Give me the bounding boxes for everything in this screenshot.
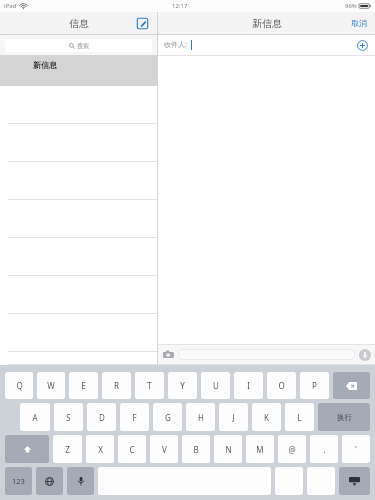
button[interactable]: J — [219, 403, 248, 431]
button[interactable]: V — [150, 435, 178, 463]
button[interactable]: Shift — [5, 435, 49, 463]
button[interactable]: 收起键盘 — [339, 467, 370, 495]
staticText: 123 — [12, 476, 25, 486]
button[interactable]: Z — [53, 435, 82, 463]
staticText: 96% — [345, 2, 357, 10]
staticText: S — [66, 412, 71, 423]
staticText: 12:17 — [172, 2, 188, 10]
staticText: 信息 — [69, 17, 89, 30]
staticText: @ — [288, 444, 296, 455]
staticText: Z — [65, 444, 70, 455]
staticText: . — [323, 444, 326, 455]
button[interactable] — [0, 276, 157, 314]
button[interactable]: ' — [342, 435, 370, 463]
button[interactable]: R — [102, 372, 131, 399]
button[interactable]: 语音信息 — [358, 348, 371, 361]
button[interactable]: C — [118, 435, 146, 463]
button[interactable] — [0, 238, 157, 276]
staticText: G — [165, 412, 171, 423]
staticText: W — [47, 380, 55, 391]
button[interactable]: . — [310, 435, 338, 463]
staticText: U — [213, 380, 219, 391]
staticText: J — [232, 412, 235, 423]
button[interactable]: D — [87, 403, 116, 431]
button[interactable]: 撰写新信息 — [134, 15, 150, 31]
staticText: H — [198, 412, 204, 423]
staticText: 新信息 — [33, 60, 57, 70]
button[interactable]: A — [20, 403, 50, 431]
button[interactable] — [178, 349, 355, 360]
button[interactable]: 添加联系人 — [355, 38, 369, 52]
staticText: R — [114, 380, 119, 391]
staticText: A — [32, 412, 38, 423]
staticText: K — [264, 412, 269, 423]
staticText: 搜索 — [77, 42, 89, 50]
button[interactable]: 切换输入法 — [36, 467, 63, 495]
staticText: Q — [16, 380, 23, 391]
staticText: D — [99, 412, 105, 423]
button[interactable]: 听写 — [67, 467, 94, 495]
button[interactable]: @ — [278, 435, 306, 463]
button[interactable]: Y — [168, 372, 197, 399]
button[interactable]: T — [135, 372, 164, 399]
button[interactable]: 换行 — [318, 403, 370, 431]
button[interactable]: F — [120, 403, 149, 431]
button[interactable]: G — [153, 403, 182, 431]
staticText: 新信息 — [252, 17, 282, 30]
button[interactable]: K — [252, 403, 281, 431]
staticText: M — [256, 444, 264, 455]
button[interactable]: O — [267, 372, 296, 399]
staticText: T — [147, 380, 152, 391]
staticText: F — [132, 412, 137, 423]
button[interactable]: 删除 — [333, 372, 370, 399]
button[interactable] — [0, 86, 157, 124]
button[interactable]: P — [300, 372, 329, 399]
button[interactable]: S — [54, 403, 83, 431]
button[interactable]: Q — [5, 372, 33, 399]
button[interactable]: I — [234, 372, 263, 399]
button[interactable]: E — [69, 372, 98, 399]
button[interactable] — [0, 200, 157, 238]
staticText: I — [247, 380, 250, 391]
button[interactable]: U — [201, 372, 230, 399]
button[interactable]: 取消 — [349, 16, 369, 30]
staticText: P — [312, 380, 317, 391]
button[interactable]: 新信息 — [0, 55, 157, 86]
button[interactable] — [0, 352, 157, 365]
staticText: Y — [180, 380, 185, 391]
staticText: 换行 — [337, 413, 352, 422]
button[interactable]: 搜索 — [5, 39, 152, 52]
staticText: B — [193, 444, 199, 455]
button[interactable] — [0, 124, 157, 162]
button[interactable]: L — [285, 403, 314, 431]
staticText: V — [162, 444, 167, 455]
button[interactable]: X — [86, 435, 114, 463]
button[interactable]: W — [37, 372, 65, 399]
staticText: E — [81, 380, 86, 391]
staticText: C — [129, 444, 135, 455]
staticText: O — [278, 380, 285, 391]
staticText: iPad — [4, 2, 17, 10]
button[interactable]: 123 — [5, 467, 32, 495]
button[interactable]: H — [186, 403, 215, 431]
staticText: ' — [355, 444, 357, 455]
button[interactable]: M — [246, 435, 274, 463]
staticText: 取消 — [351, 18, 367, 28]
staticText: 收件人: — [164, 40, 187, 50]
button[interactable] — [0, 314, 157, 352]
button[interactable] — [0, 162, 157, 200]
staticText: L — [297, 412, 302, 423]
button[interactable]: 相机 — [162, 348, 175, 361]
staticText: N — [225, 444, 232, 455]
button[interactable]: N — [214, 435, 242, 463]
button[interactable]: B — [182, 435, 210, 463]
staticText: X — [98, 444, 103, 455]
